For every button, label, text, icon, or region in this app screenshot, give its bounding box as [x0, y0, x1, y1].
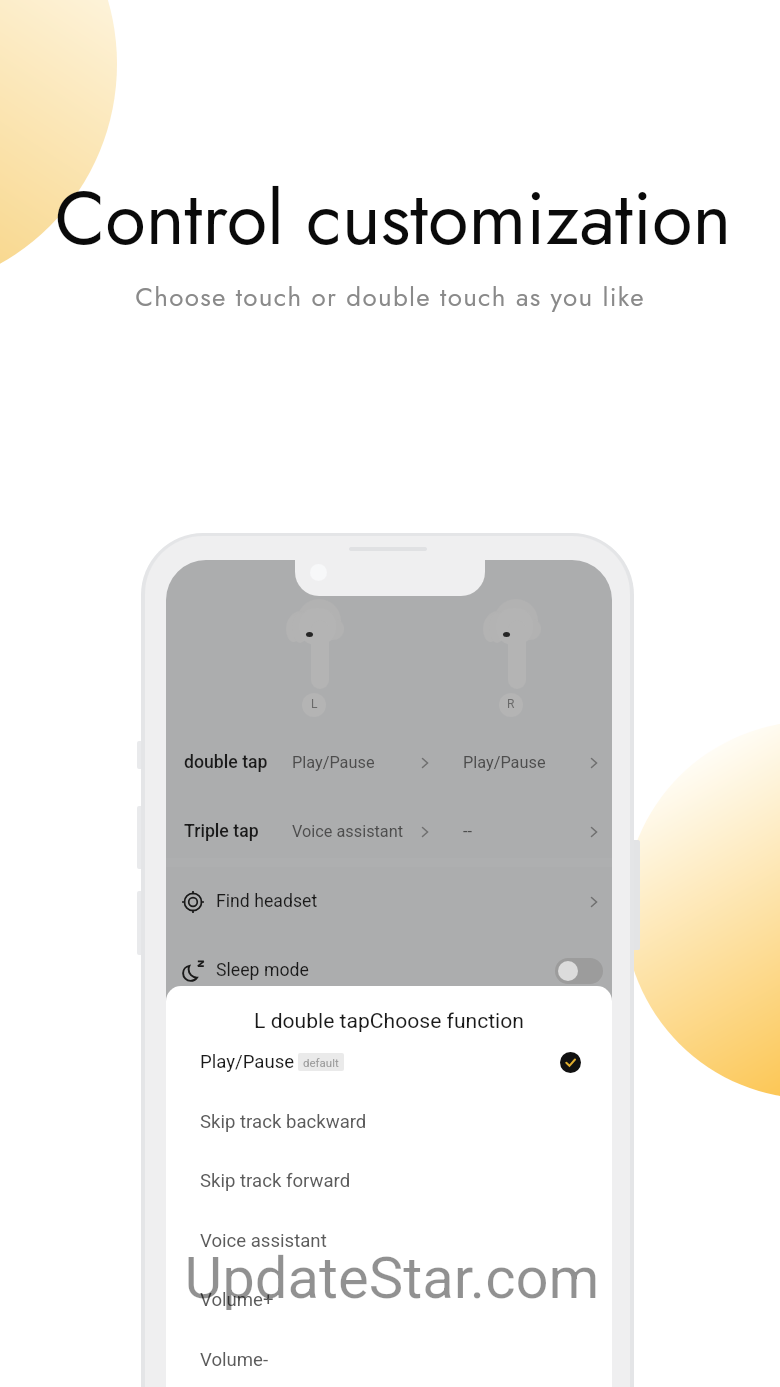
staticText: Volume-: [200, 1349, 269, 1371]
staticText: --: [463, 822, 473, 841]
staticText: Volume+: [200, 1289, 274, 1311]
staticText: Skip track backward: [200, 1111, 367, 1133]
button[interactable]: Skip track forward: [166, 1160, 612, 1204]
staticText: Voice assistant: [200, 1230, 327, 1252]
staticText: Play/Pause: [200, 1051, 295, 1073]
staticText: Triple tap: [184, 821, 259, 842]
button[interactable]: double tap: [166, 729, 612, 797]
staticText: Find headset: [216, 891, 318, 912]
button[interactable]: Find headset: [166, 868, 612, 936]
staticText: Voice assistant: [292, 822, 404, 841]
button[interactable]: Volume+: [166, 1279, 612, 1323]
button[interactable]: Volume-: [166, 1339, 612, 1383]
staticText: Skip track forward: [200, 1170, 351, 1192]
staticText: L: [311, 697, 318, 711]
button[interactable]: Triple tap: [166, 798, 612, 866]
staticText: double tap: [184, 752, 268, 773]
staticText: Play/Pause: [463, 753, 546, 772]
button[interactable]: Voice assistant: [166, 1220, 612, 1264]
staticText: default: [303, 1056, 339, 1069]
staticText: UpdateStar.com: [2, 1244, 780, 1312]
staticText: Control customization: [3, 165, 780, 272]
staticText: Sleep mode: [216, 960, 309, 981]
staticText: Play/Pause: [292, 753, 375, 772]
button[interactable]: Sleep mode: [166, 937, 612, 1005]
staticText: Choose touch or double touch as you like: [0, 278, 780, 316]
staticText: L double tapChoose function: [166, 1008, 612, 1033]
staticText: R: [507, 697, 515, 711]
button[interactable]: Play/Pause: [166, 1042, 612, 1084]
button[interactable]: Skip track backward: [166, 1101, 612, 1145]
